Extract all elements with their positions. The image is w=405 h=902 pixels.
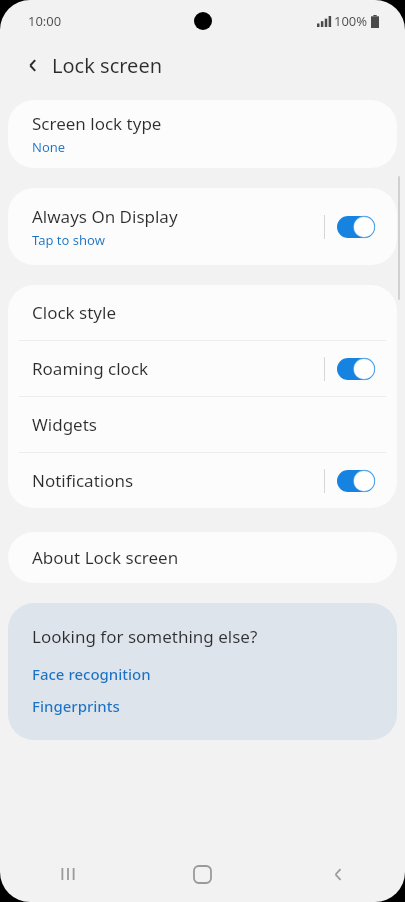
staticText: Face recognition [32, 664, 151, 684]
button[interactable]: Toggle [337, 470, 375, 492]
staticText: 10:00 [28, 12, 62, 30]
staticText: Screen lock type [32, 112, 162, 135]
staticText: Tap to show [32, 231, 105, 249]
staticText: Notifications [32, 469, 324, 492]
button[interactable]: Always On Display [8, 188, 397, 265]
button[interactable]: Screen lock type [8, 100, 397, 168]
button[interactable]: Clock style [8, 285, 397, 340]
staticText: Always On Display [32, 205, 178, 228]
button[interactable]: Widgets [8, 397, 397, 452]
button[interactable]: Back [270, 846, 405, 902]
staticText: Lock screen [52, 52, 163, 79]
staticText: Roaming clock [32, 357, 324, 380]
button[interactable]: Roaming clock [8, 341, 397, 396]
staticText: About Lock screen [32, 546, 179, 569]
button[interactable]: Fingerprints [32, 696, 120, 716]
button[interactable]: Notifications [8, 453, 397, 508]
staticText: Widgets [32, 413, 97, 436]
button[interactable]: About Lock screen [8, 532, 397, 583]
button[interactable]: Toggle [337, 216, 375, 238]
button[interactable]: Recent apps [0, 846, 135, 902]
staticText: Fingerprints [32, 696, 120, 716]
button[interactable]: Face recognition [32, 664, 151, 684]
staticText: Clock style [32, 301, 116, 324]
staticText: Looking for something else? [32, 625, 258, 648]
staticText: 100% [334, 12, 368, 30]
button[interactable]: Back [14, 47, 50, 83]
button[interactable]: Toggle [337, 358, 375, 380]
button[interactable]: Home [135, 846, 270, 902]
staticText: None [32, 138, 66, 156]
